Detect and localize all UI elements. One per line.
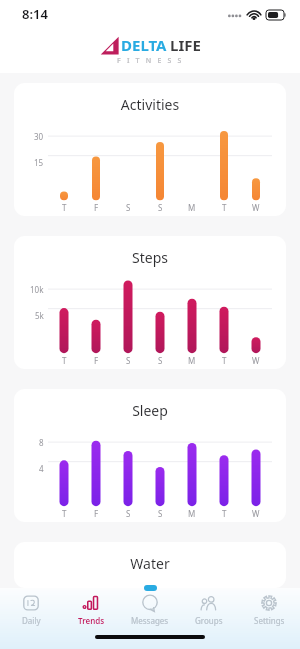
button[interactable]: Steps	[14, 236, 286, 369]
button[interactable]: Trends	[63, 594, 119, 626]
staticText: T	[62, 355, 67, 366]
staticText: T	[222, 508, 227, 519]
staticText: 30	[34, 131, 44, 142]
staticText: S	[126, 508, 131, 519]
button[interactable]: Messages	[122, 594, 178, 626]
staticText: S	[126, 202, 131, 213]
button[interactable]: Water	[14, 542, 286, 588]
staticText: LIFE	[170, 35, 201, 55]
staticText: S	[158, 508, 163, 519]
staticText: Settings	[254, 615, 285, 626]
staticText: Messages	[131, 615, 169, 626]
staticText: F I T N E S S	[117, 56, 184, 66]
staticText: T	[62, 202, 67, 213]
staticText: W	[252, 355, 260, 366]
staticText: Sleep	[14, 401, 286, 420]
staticText: T	[222, 202, 227, 213]
staticText: S	[158, 202, 163, 213]
staticText: S	[126, 355, 131, 366]
staticText: Groups	[195, 615, 223, 626]
staticText: 8:14	[22, 5, 48, 23]
staticText: Daily	[22, 615, 41, 626]
staticText: 5k	[35, 310, 44, 321]
staticText: W	[252, 508, 260, 519]
button[interactable]: Sleep	[14, 389, 286, 522]
staticText: DELTA	[121, 35, 167, 55]
staticText: 10k	[30, 284, 44, 295]
staticText: Steps	[14, 248, 286, 267]
staticText: Water	[14, 554, 286, 573]
button[interactable]: Settings	[241, 594, 297, 626]
staticText: M	[188, 202, 196, 213]
staticText: 8	[39, 437, 44, 448]
staticText: 15	[34, 157, 44, 168]
staticText: T	[222, 355, 227, 366]
staticText: F	[94, 202, 99, 213]
staticText: 4	[39, 463, 44, 474]
button[interactable]: Daily	[3, 594, 59, 626]
staticText: F	[94, 508, 99, 519]
staticText: S	[158, 355, 163, 366]
staticText: M	[188, 508, 196, 519]
staticText: F	[94, 355, 99, 366]
staticText: Trends	[78, 615, 105, 626]
button[interactable]: Groups	[181, 594, 237, 626]
staticText: M	[188, 355, 196, 366]
staticText: T	[62, 508, 67, 519]
staticText: W	[252, 202, 260, 213]
button[interactable]: Activities	[14, 83, 286, 216]
staticText: Activities	[14, 95, 286, 114]
